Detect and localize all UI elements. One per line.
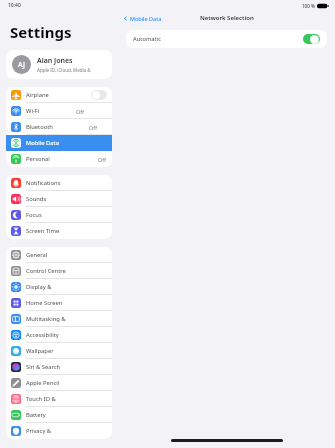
staticText: Accessibility — [26, 331, 59, 339]
button[interactable]: General — [6, 247, 112, 263]
button[interactable]: Control Centre — [6, 263, 112, 279]
button[interactable]: Privacy & Security — [6, 423, 112, 439]
staticText: Privacy & Security — [26, 427, 66, 435]
staticText: Battery — [26, 411, 46, 419]
staticText: 10:40 — [8, 2, 21, 9]
staticText: Off — [89, 124, 98, 131]
button[interactable]: Automatic network selection, on — [303, 34, 320, 44]
staticText: Alan Jones — [37, 56, 73, 66]
staticText: Apple ID, iCloud, Media & Purchases — [37, 67, 106, 73]
staticText: Automatic — [133, 35, 161, 43]
staticText: Sounds — [26, 195, 47, 203]
staticText: Wi-Fi — [26, 107, 40, 115]
button[interactable]: Mobile Data — [6, 135, 112, 151]
staticText: Multitasking & Gestures — [26, 315, 66, 323]
button[interactable]: Battery — [6, 407, 112, 423]
button[interactable]: Apple Pencil — [6, 375, 112, 391]
button[interactable]: Screen Time — [6, 223, 112, 239]
button[interactable]: Mobile Data — [123, 15, 162, 22]
button[interactable]: AJ — [6, 50, 112, 79]
button[interactable]: Notifications — [6, 175, 112, 191]
button[interactable]: Wi-Fi — [6, 103, 112, 119]
button[interactable]: Automatic — [126, 30, 327, 48]
staticText: Mobile Data — [130, 15, 162, 22]
staticText: Personal Hotspot — [26, 155, 62, 163]
button[interactable]: Focus — [6, 207, 112, 223]
staticText: 100 % — [302, 3, 315, 9]
staticText: General — [26, 251, 48, 259]
staticText: Apple Pencil — [26, 379, 60, 387]
button[interactable]: Personal Hotspot — [6, 151, 112, 167]
staticText: Wallpaper — [26, 347, 54, 355]
button[interactable]: Wallpaper — [6, 343, 112, 359]
staticText: Off — [76, 108, 85, 115]
button[interactable]: Siri & Search — [6, 359, 112, 375]
button[interactable]: Sounds — [6, 191, 112, 207]
staticText: Airplane Mode — [26, 91, 58, 99]
staticText: Notifications — [26, 179, 61, 187]
button[interactable]: Display & Brightness — [6, 279, 112, 295]
staticText: Mobile Data — [26, 139, 59, 147]
staticText: Touch ID & Passcode — [26, 395, 66, 403]
button[interactable]: Multitasking & Gestures — [6, 311, 112, 327]
button[interactable]: Bluetooth — [6, 119, 112, 135]
staticText: Off — [98, 156, 107, 163]
staticText: Display & Brightness — [26, 283, 66, 291]
staticText: Bluetooth — [26, 123, 53, 131]
staticText: Screen Time — [26, 227, 60, 235]
staticText: Settings — [10, 22, 72, 42]
staticText: AJ — [18, 60, 25, 70]
staticText: Control Centre — [26, 267, 66, 275]
button[interactable]: Touch ID & Passcode — [6, 391, 112, 407]
button[interactable]: Accessibility — [6, 327, 112, 343]
staticText: Home Screen & App Library — [26, 299, 66, 307]
staticText: Network Selection — [200, 14, 254, 22]
button[interactable]: Home Screen & App Library — [6, 295, 112, 311]
button[interactable]: Airplane Mode — [6, 87, 112, 103]
button[interactable]: Toggle off — [91, 90, 107, 100]
staticText: Focus — [26, 211, 42, 219]
staticText: Siri & Search — [26, 363, 61, 371]
